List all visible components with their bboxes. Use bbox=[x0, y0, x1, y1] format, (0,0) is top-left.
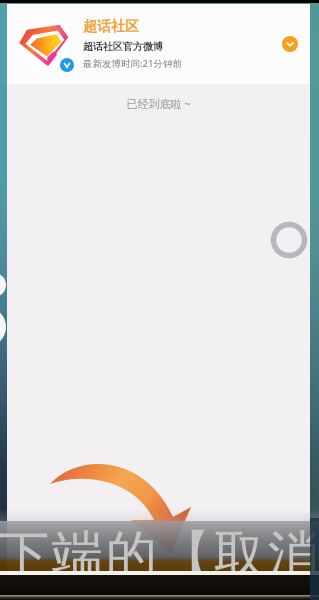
button[interactable]: 超话社区 bbox=[7, 4, 310, 84]
staticText: 超话社区官方微博 bbox=[83, 40, 163, 53]
staticText: 下端的【取消 bbox=[0, 523, 319, 587]
staticText: 超话社区 bbox=[83, 18, 139, 36]
staticText: 已经到底啦 ~ bbox=[7, 96, 310, 111]
staticText: 最新发博时间:21分钟前 bbox=[83, 57, 182, 70]
button[interactable]: Expand bbox=[282, 36, 298, 52]
